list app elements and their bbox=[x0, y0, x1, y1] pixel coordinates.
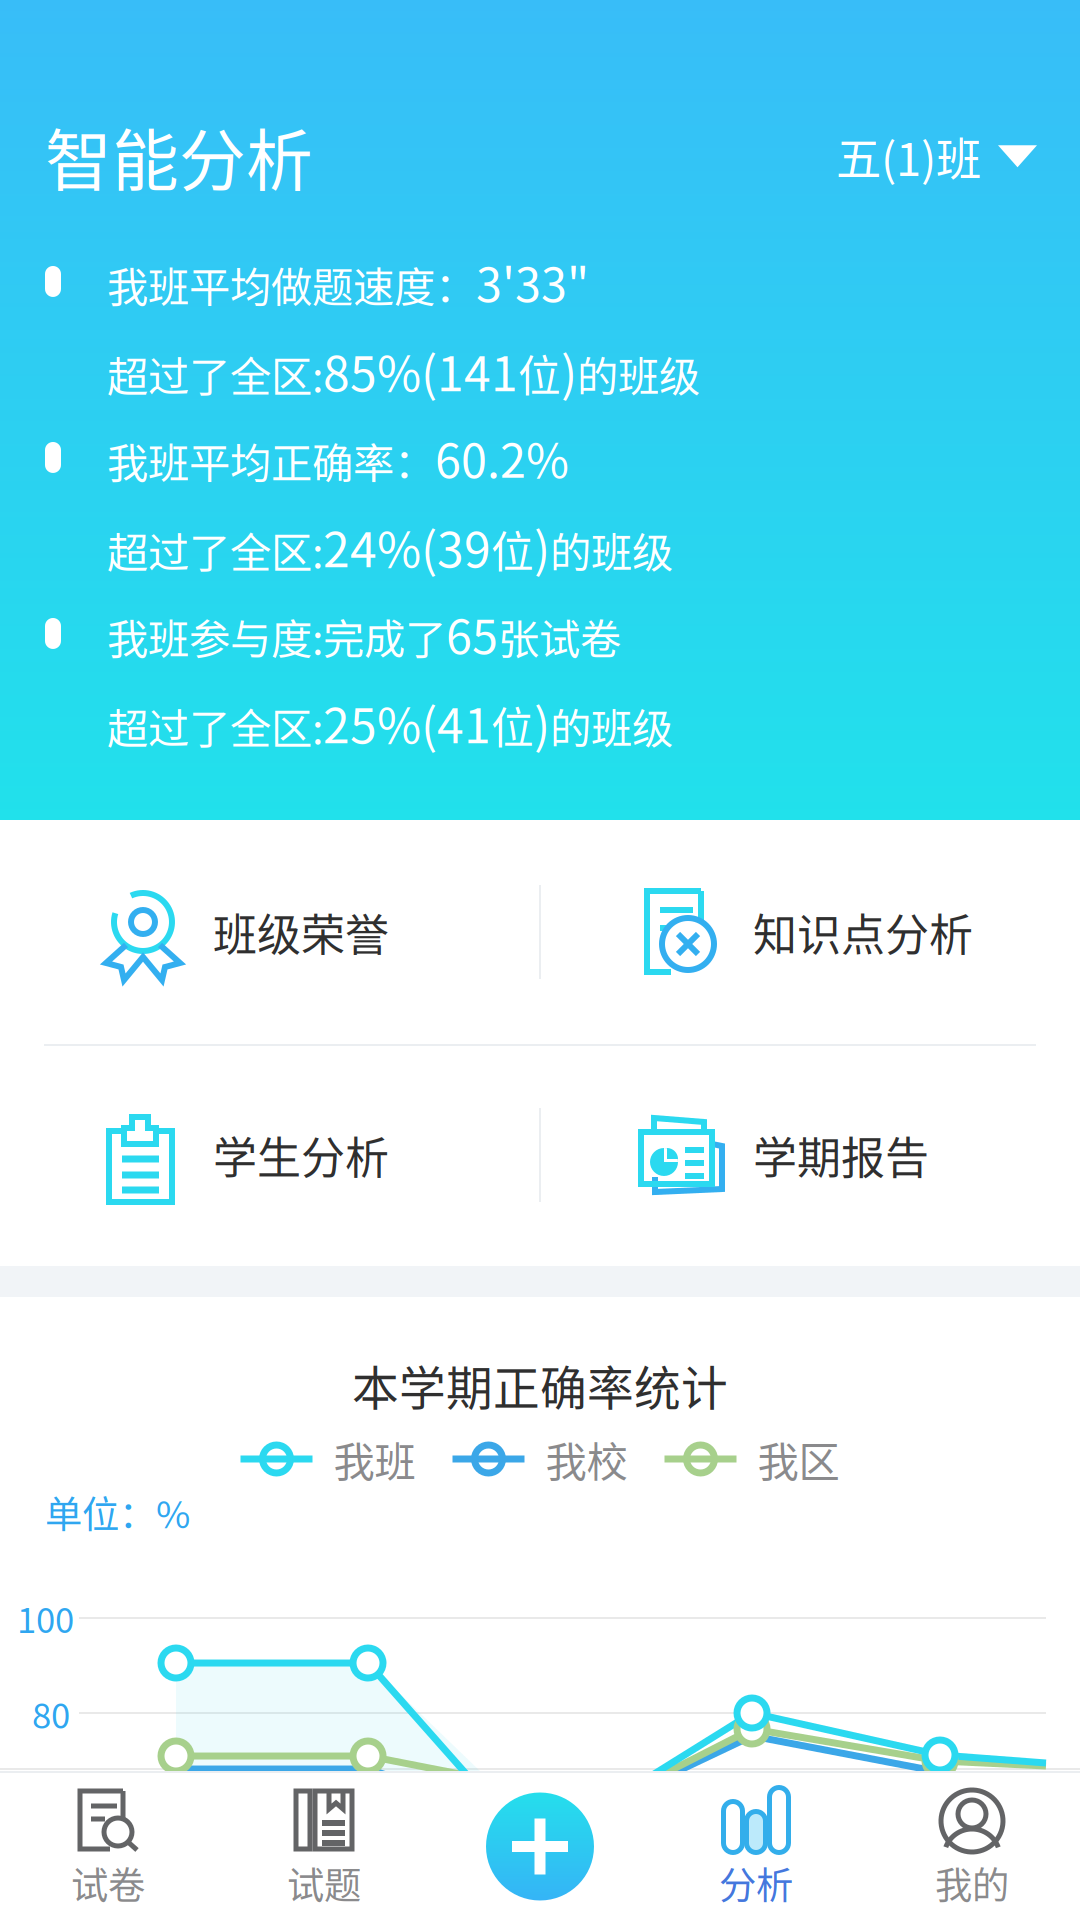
button[interactable]: 试卷 bbox=[0, 1773, 216, 1920]
staticText: 我班平均正确率：60.2% bbox=[107, 424, 569, 490]
staticText: 分析 bbox=[719, 1856, 793, 1910]
staticText: 五(1)班 bbox=[836, 123, 981, 189]
button[interactable]: 学生分析 bbox=[0, 1044, 540, 1266]
staticText: 超过了全区:85%(141位)的班级 bbox=[107, 336, 700, 404]
button[interactable]: 班级荣誉 bbox=[0, 820, 540, 1044]
staticText: 我班参与度:完成了65张试卷 bbox=[107, 600, 621, 666]
staticText: 学生分析 bbox=[213, 1123, 389, 1187]
staticText: 100 bbox=[17, 1593, 74, 1643]
staticText: 超过了全区:24%(39位)的班级 bbox=[107, 512, 673, 580]
staticText: 学期报告 bbox=[753, 1123, 929, 1187]
staticText: 试卷 bbox=[71, 1856, 145, 1910]
button[interactable]: 我的 bbox=[864, 1773, 1080, 1920]
button[interactable]: 试题 bbox=[216, 1773, 432, 1920]
staticText: 超过了全区:25%(41位)的班级 bbox=[107, 688, 673, 756]
staticText: 智能分析 bbox=[45, 108, 313, 204]
staticText: 知识点分析 bbox=[753, 900, 973, 964]
staticText: 我班平均做题速度：3'33" bbox=[107, 248, 589, 314]
staticText: 我的 bbox=[935, 1856, 1009, 1910]
button[interactable]: 知识点分析 bbox=[540, 820, 1080, 1044]
staticText: 单位：% bbox=[45, 1485, 190, 1539]
button[interactable]: 学期报告 bbox=[540, 1044, 1080, 1266]
staticText: 我区 bbox=[757, 1429, 839, 1489]
staticText: 班级荣誉 bbox=[213, 900, 389, 964]
staticText: 我校 bbox=[545, 1429, 627, 1489]
button[interactable]: 新建 bbox=[432, 1773, 648, 1920]
staticText: 80 bbox=[32, 1688, 70, 1739]
staticText: 本学期正确率统计 bbox=[352, 1351, 728, 1419]
button[interactable]: 分析 bbox=[648, 1773, 864, 1920]
staticText: 我班 bbox=[333, 1429, 415, 1489]
staticText: 试题 bbox=[287, 1856, 361, 1910]
button[interactable]: 五(1)班 bbox=[828, 111, 1045, 201]
